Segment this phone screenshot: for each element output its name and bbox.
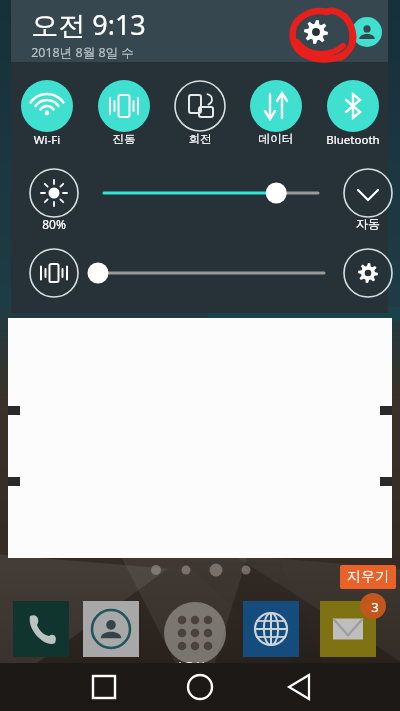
button[interactable]: Contacts	[83, 601, 139, 657]
button[interactable]: Email	[320, 601, 376, 657]
staticText: 회전	[168, 132, 232, 146]
button[interactable]: 회전	[168, 80, 232, 152]
button[interactable]: Apps	[160, 598, 230, 668]
button[interactable]: Browser	[243, 601, 299, 657]
staticText: 진동	[92, 132, 156, 146]
button[interactable]: Brightness	[28, 167, 80, 219]
button[interactable]: Recent apps	[82, 665, 126, 709]
button[interactable]: Brightness slider	[93, 178, 329, 208]
staticText: 80%	[28, 216, 80, 232]
staticText: 3	[365, 598, 385, 616]
staticText: 자동	[342, 216, 394, 231]
staticText: 지우기	[347, 568, 389, 586]
button[interactable]: User profile	[352, 17, 382, 47]
staticText: 데이터	[244, 132, 308, 146]
staticText: Wi-Fi	[15, 132, 79, 148]
button[interactable]: Sound settings	[342, 247, 394, 299]
button[interactable]: Wi-Fi	[15, 80, 79, 152]
button[interactable]: Volume slider	[87, 258, 335, 288]
button[interactable]	[8, 318, 392, 558]
button[interactable]: Home	[178, 665, 222, 709]
staticText: LG U+	[160, 658, 230, 674]
button[interactable]: 진동	[92, 80, 156, 152]
button[interactable]: Phone	[13, 601, 69, 657]
button[interactable]: 데이터	[244, 80, 308, 152]
button[interactable]: 지우기	[340, 565, 396, 589]
button[interactable]: Sound mode	[28, 247, 80, 299]
staticText: 오전 9:13	[31, 6, 146, 43]
button[interactable]: Settings	[300, 16, 332, 48]
button[interactable]: Back	[278, 665, 322, 709]
staticText: 2018년 8월 8일 수	[31, 44, 134, 61]
button[interactable]: Auto brightness	[342, 167, 394, 219]
staticText: Bluetooth	[321, 132, 385, 148]
button[interactable]: Bluetooth	[321, 80, 385, 152]
